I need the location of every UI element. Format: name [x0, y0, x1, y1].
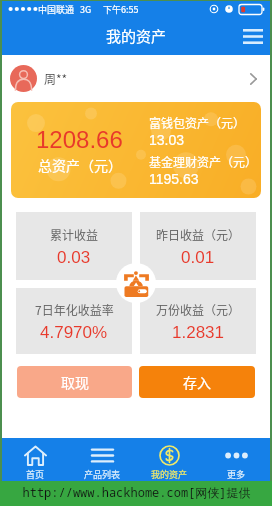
staticText: http://www.hackhome.com[网侠]提供 — [22, 484, 251, 500]
button[interactable]: 昨日收益（元） — [140, 212, 256, 280]
button[interactable]: 我的资产 — [136, 438, 203, 481]
staticText: 取现 — [61, 372, 89, 392]
staticText: 7日年化收益率 — [35, 301, 114, 318]
button[interactable]: 首页 — [2, 438, 69, 481]
button[interactable]: 产品列表 — [69, 438, 136, 481]
staticText: 13.03 — [149, 132, 185, 148]
staticText: 更多 — [227, 468, 246, 481]
staticText: 中国联通 — [38, 3, 75, 16]
button[interactable]: Menu — [236, 19, 270, 53]
staticText: 富钱包资产（元） — [149, 114, 246, 131]
staticText: 累计收益 — [50, 226, 99, 243]
button[interactable]: 周** — [2, 55, 270, 102]
button[interactable]: 存入 — [139, 366, 255, 398]
staticText: 4.7970% — [40, 323, 108, 342]
staticText: 产品列表 — [84, 468, 121, 481]
staticText: 万份收益（元） — [156, 301, 241, 318]
staticText: 1195.63 — [149, 171, 199, 187]
button[interactable]: 累计收益 — [16, 212, 132, 280]
staticText: 存入 — [183, 372, 211, 392]
button[interactable]: 更多 — [203, 438, 270, 481]
staticText: 我的资产 — [151, 468, 188, 481]
staticText: 首页 — [26, 468, 45, 481]
button[interactable]: 万份收益（元） — [140, 288, 256, 354]
staticText: 我的资产 — [106, 25, 167, 47]
staticText: 0.03 — [57, 248, 91, 267]
staticText: 昨日收益（元） — [156, 226, 241, 243]
button[interactable]: 1208.66 — [11, 102, 261, 198]
staticText: 周** — [44, 70, 68, 87]
staticText: 下午6:55 — [103, 3, 139, 16]
staticText: 0.01 — [181, 248, 215, 267]
staticText: 基金理财资产（元） — [149, 153, 258, 170]
button[interactable]: 7日年化收益率 — [16, 288, 132, 354]
staticText: 1208.66 — [36, 126, 123, 153]
staticText: 总资产（元） — [38, 155, 122, 175]
button[interactable]: 取现 — [17, 366, 132, 398]
staticText: 1.2831 — [172, 323, 224, 342]
staticText: 3G — [80, 3, 92, 16]
